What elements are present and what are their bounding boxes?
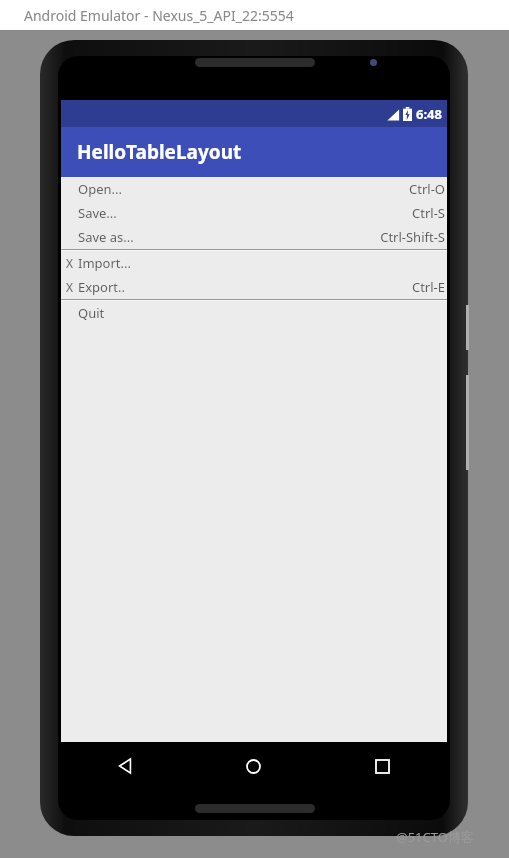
staticText: Save as... <box>78 228 134 246</box>
staticText: @51CTO博客 <box>396 828 474 846</box>
button[interactable]: Save as... <box>61 225 447 249</box>
button[interactable]: Back <box>61 742 189 790</box>
staticText: 6:48 <box>416 105 442 123</box>
staticText: HelloTableLayout <box>77 139 242 165</box>
staticText: Export.. <box>78 278 125 296</box>
staticText: Ctrl-S <box>412 204 445 222</box>
staticText: Quit <box>78 304 105 322</box>
button[interactable]: Quit <box>61 301 447 325</box>
staticText: Ctrl-Shift-S <box>380 228 445 246</box>
staticText: X <box>66 279 74 295</box>
staticText: Open... <box>78 180 122 198</box>
staticText: Android Emulator - Nexus_5_API_22:5554 <box>24 6 294 25</box>
staticText: X <box>66 255 74 271</box>
staticText: Save... <box>78 204 117 222</box>
staticText: Import... <box>78 254 131 272</box>
button[interactable]: Open... <box>61 177 447 201</box>
staticText: Ctrl-E <box>411 278 445 296</box>
button[interactable]: X <box>61 251 447 275</box>
button[interactable]: Home <box>189 742 318 790</box>
button[interactable]: X <box>61 275 447 299</box>
button[interactable]: Save... <box>61 201 447 225</box>
button[interactable]: Recents <box>318 742 447 790</box>
staticText: Ctrl-O <box>409 180 445 198</box>
